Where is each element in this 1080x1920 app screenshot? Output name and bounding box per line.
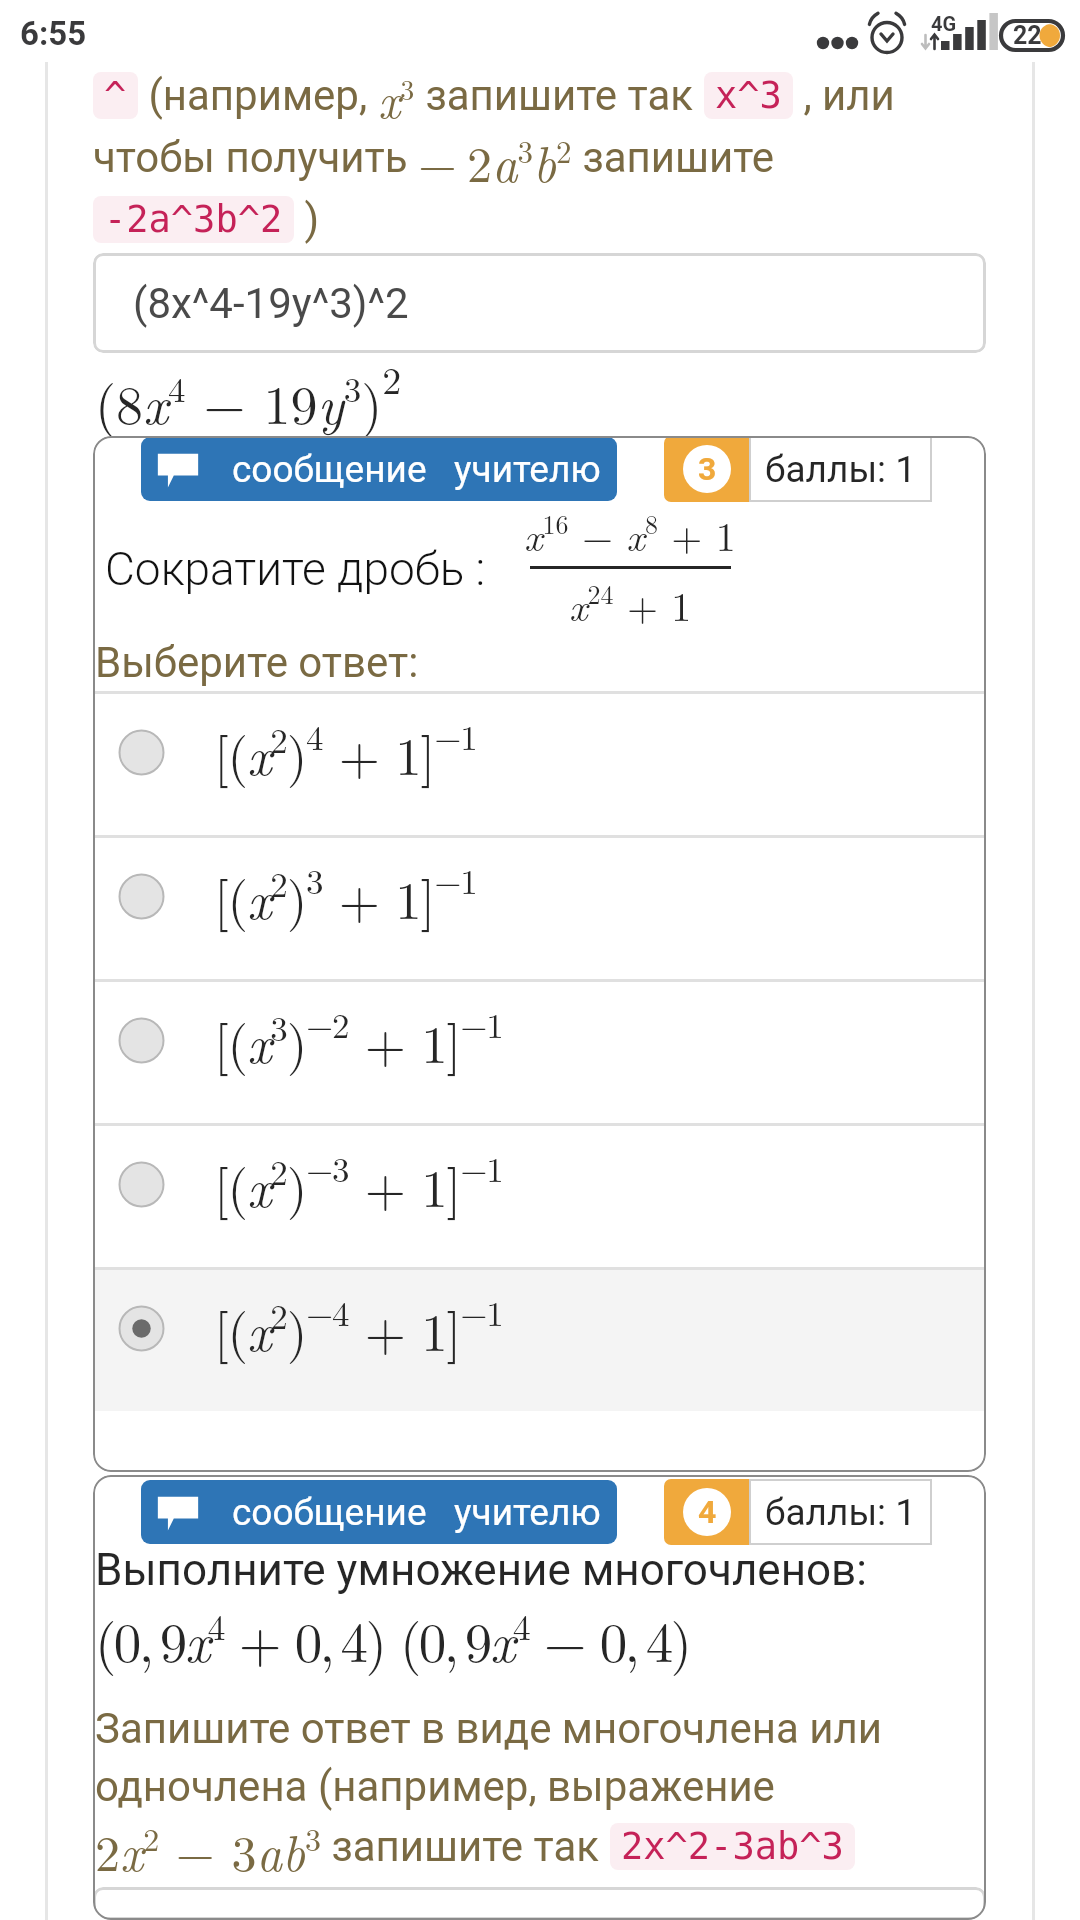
staticText: [(x2)3 + 1]−1 <box>214 855 477 934</box>
staticText: Выберите ответ: <box>95 638 419 687</box>
button[interactable]: [(x2)−4 + 1]−1 <box>93 1270 986 1411</box>
staticText: ) <box>294 195 320 244</box>
staticText: Сократите дробь : <box>105 542 486 596</box>
button[interactable]: [(x2)−3 + 1]−1 <box>93 1126 986 1267</box>
staticText: запишите так <box>415 71 704 120</box>
staticText: сообщение учителю <box>232 1491 601 1534</box>
staticText: запишите так <box>321 1822 610 1871</box>
staticText: 4G <box>931 12 957 35</box>
button[interactable]: [(x3)−2 + 1]−1 <box>93 982 986 1123</box>
staticText: сообщение учителю <box>232 448 601 491</box>
button[interactable]: [(x2)3 + 1]−1 <box>93 838 986 979</box>
staticText: 22 <box>1013 21 1042 50</box>
button[interactable]: (8x^4-19y^3)^2 <box>93 253 986 353</box>
button[interactable]: сообщение учителю <box>141 1480 617 1544</box>
button[interactable] <box>93 1887 986 1920</box>
staticText: 2x^2-3ab^3 <box>621 1825 844 1868</box>
staticText: чтобы получить <box>93 133 418 182</box>
staticText: ^ <box>104 74 127 117</box>
staticText: x3 <box>378 64 415 126</box>
staticText: [(x2)−3 + 1]−1 <box>214 1143 503 1222</box>
staticText: (8x4 − 19y3)2 <box>95 351 402 439</box>
staticText: 4 <box>698 1493 717 1531</box>
button[interactable]: сообщение учителю <box>141 437 617 501</box>
button[interactable]: 3 <box>664 436 749 502</box>
staticText: одночлена (например, выражение <box>95 1762 775 1811</box>
staticText: баллы: 1 <box>765 448 917 491</box>
staticText: -2a^3b^2 <box>104 198 283 241</box>
staticText: Запишите ответ в виде многочлена или <box>95 1704 882 1753</box>
staticText: x24 + 1 <box>569 575 692 632</box>
staticText: баллы: 1 <box>765 1491 917 1534</box>
staticText: 2x2 − 3ab3 <box>95 1815 321 1877</box>
staticText: (0, 9x4 + 0, 4) (0, 9x4 − 0, 4) <box>95 1599 690 1678</box>
staticText: Выполните умножение многочленов: <box>95 1544 867 1596</box>
staticText: x16 − x8 + 1 <box>524 505 736 562</box>
button[interactable]: 4 <box>664 1479 749 1545</box>
staticText: [(x2)4 + 1]−1 <box>214 711 477 790</box>
staticText: 6:55 <box>20 14 87 53</box>
staticText: x^3 <box>715 74 782 117</box>
staticText: [(x2)−4 + 1]−1 <box>214 1287 503 1366</box>
staticText: − 2a3b2 <box>418 126 572 188</box>
staticText: [(x3)−2 + 1]−1 <box>214 999 503 1078</box>
button[interactable]: [(x2)4 + 1]−1 <box>93 694 986 835</box>
staticText: (например, <box>138 71 378 120</box>
staticText: , или <box>793 71 895 120</box>
staticText: 3 <box>698 450 717 488</box>
staticText: запишите <box>572 133 775 182</box>
staticText: (8x^4-19y^3)^2 <box>133 279 409 328</box>
